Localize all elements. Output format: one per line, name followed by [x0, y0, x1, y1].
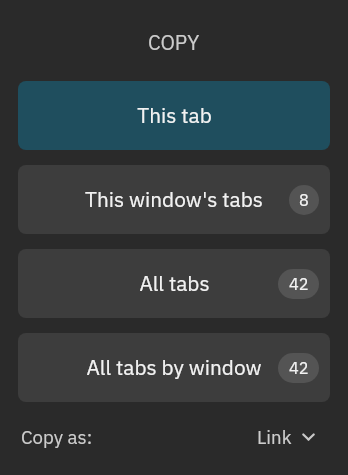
staticText: This tab	[137, 102, 212, 129]
staticText: Link	[257, 425, 292, 449]
button[interactable]: All tabs	[18, 249, 330, 318]
button[interactable]: This window's tabs	[18, 165, 330, 234]
button[interactable]: This tab	[18, 81, 330, 150]
button[interactable]: Link	[257, 425, 315, 449]
staticText: This window's tabs	[85, 186, 263, 213]
button[interactable]: All tabs by window	[18, 333, 330, 402]
staticText: COPY	[148, 29, 200, 56]
staticText: 42	[289, 273, 309, 294]
staticText: 8	[299, 189, 309, 210]
staticText: 42	[289, 357, 309, 378]
staticText: All tabs	[139, 270, 210, 297]
staticText: All tabs by window	[86, 354, 262, 381]
other: Expand copy format	[302, 429, 315, 445]
staticText: Copy as:	[21, 425, 93, 449]
